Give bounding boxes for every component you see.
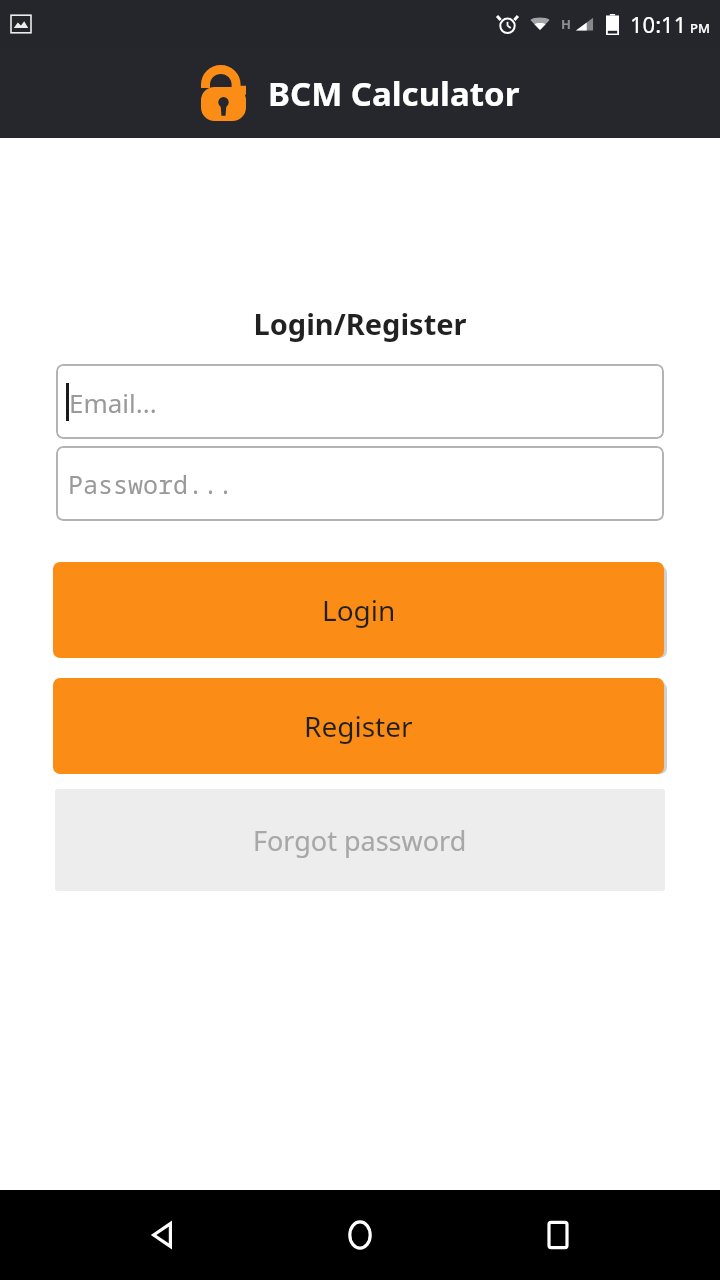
button[interactable]: Recent apps	[522, 1199, 594, 1271]
staticText: Forgot password	[253, 822, 467, 859]
staticText: Password...	[68, 467, 234, 501]
staticText: H	[561, 15, 571, 33]
staticText: 10:11	[630, 9, 687, 39]
button[interactable]: Login	[53, 562, 664, 658]
button[interactable]: Back	[126, 1199, 198, 1271]
staticText: BCM Calculator	[268, 71, 520, 116]
button[interactable]: Password...	[56, 446, 664, 521]
button[interactable]: Email...	[56, 364, 664, 439]
button[interactable]: Home	[324, 1199, 396, 1271]
button[interactable]: Register	[53, 678, 664, 774]
staticText: PM	[690, 19, 710, 37]
button[interactable]: Forgot password	[55, 789, 665, 891]
staticText: Login	[322, 591, 396, 629]
staticText: Email...	[69, 385, 157, 420]
staticText: Login/Register	[0, 304, 720, 343]
staticText: Register	[304, 707, 413, 745]
